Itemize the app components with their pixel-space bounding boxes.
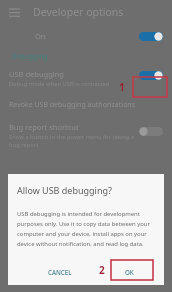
staticText: Allow USB debugging? <box>17 184 112 196</box>
staticText: computer and your device, install apps o… <box>17 230 147 238</box>
staticText: device without notification, and read lo… <box>17 240 144 248</box>
staticText: USB debugging is intended for developmen… <box>17 210 140 218</box>
staticText: 1 <box>119 80 125 94</box>
button[interactable]: Toggle off <box>139 127 163 136</box>
staticText: Show a button in the power menu for taki… <box>9 133 144 149</box>
staticText: Debugging <box>12 52 48 61</box>
staticText: purposes only. Use it to copy data betwe… <box>17 220 150 228</box>
staticText: USB debugging <box>9 69 64 79</box>
button[interactable]: Revoke USB debugging authorizations <box>9 100 172 110</box>
staticText: OK <box>125 268 134 276</box>
button[interactable]: USB debugging <box>0 69 172 89</box>
button[interactable]: On <box>0 24 172 48</box>
staticText: Debug mode when USB is connected <box>9 80 110 88</box>
staticText: Bug report shortcut <box>9 122 79 132</box>
staticText: On <box>35 31 46 41</box>
button[interactable]: Toggle on <box>139 32 163 41</box>
staticText: CANCEL <box>48 268 72 276</box>
button[interactable]: Toggle on <box>139 71 163 80</box>
button[interactable]: Open navigation menu <box>6 4 22 20</box>
staticText: 2 <box>99 263 105 277</box>
staticText: Developer options <box>33 5 124 19</box>
button[interactable]: CANCEL <box>44 265 76 279</box>
button[interactable]: OK <box>116 265 143 279</box>
button[interactable]: Bug report shortcut <box>0 122 172 149</box>
